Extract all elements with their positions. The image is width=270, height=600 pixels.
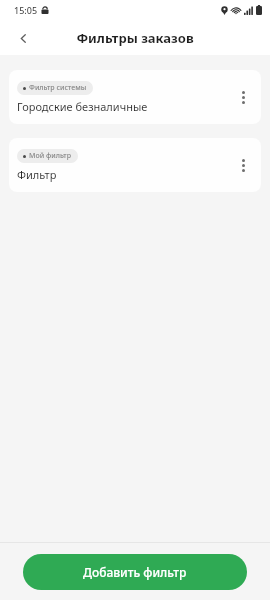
staticText: 15:05 bbox=[14, 4, 38, 16]
button[interactable]: Добавить фильтр bbox=[23, 554, 247, 590]
staticText: Городские безналичные bbox=[17, 99, 148, 114]
staticText: Фильтр bbox=[17, 167, 57, 182]
staticText: Фильтр системы bbox=[29, 83, 87, 93]
staticText: Добавить фильтр bbox=[83, 564, 187, 580]
staticText: Мой фильтр bbox=[29, 151, 72, 161]
button[interactable]: Ещё bbox=[231, 85, 255, 109]
button[interactable]: Мой фильтр bbox=[9, 138, 261, 192]
button[interactable]: Ещё bbox=[231, 153, 255, 177]
staticText: Фильтры заказов bbox=[76, 29, 194, 47]
button[interactable]: Назад bbox=[10, 25, 36, 51]
button[interactable]: Фильтр системы bbox=[9, 70, 261, 124]
